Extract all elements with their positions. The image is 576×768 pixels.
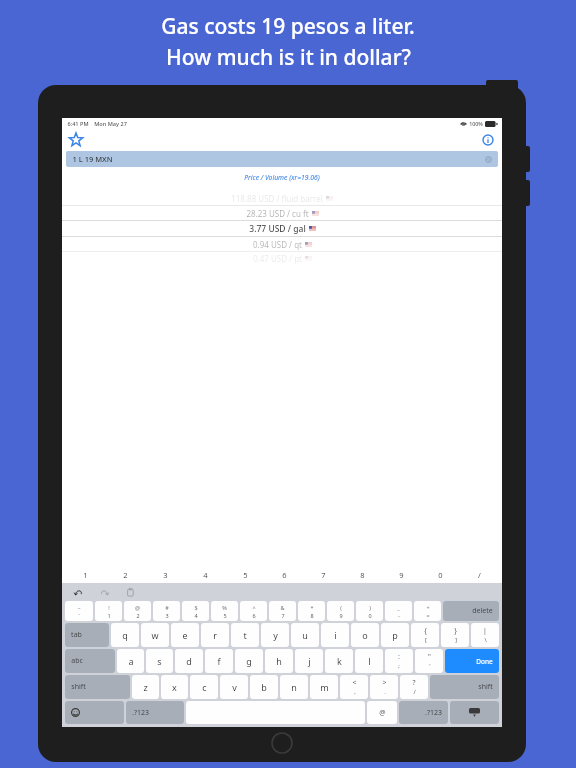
button[interactable]: u <box>291 623 319 647</box>
button[interactable]: n <box>280 675 308 699</box>
button[interactable]: > <box>370 675 398 699</box>
button[interactable]: p <box>381 623 409 647</box>
button[interactable]: 1 <box>66 568 104 581</box>
button[interactable]: 0 <box>422 568 459 581</box>
button[interactable]: % <box>211 601 238 621</box>
button[interactable]: shift <box>65 675 130 699</box>
button[interactable]: b <box>250 675 278 699</box>
button[interactable]: Redo <box>96 584 112 600</box>
staticText: 0.94 USD / qt <box>253 239 302 250</box>
button[interactable]: 3 <box>146 568 184 581</box>
button[interactable]: .?123 <box>399 701 448 724</box>
staticText: 2 <box>123 570 128 580</box>
button[interactable]: o <box>351 623 379 647</box>
button[interactable]: h <box>265 649 293 673</box>
button[interactable]: shift <box>430 675 499 699</box>
button[interactable]: .?123 <box>126 701 184 724</box>
button[interactable]: # <box>153 601 180 621</box>
button[interactable]: ) <box>356 601 383 621</box>
button[interactable]: d <box>175 649 203 673</box>
button[interactable]: Favorite <box>67 131 85 149</box>
button[interactable]: : <box>385 649 413 673</box>
button[interactable]: 9 <box>383 568 420 581</box>
button[interactable]: Emoji <box>65 701 124 724</box>
button[interactable]: Home <box>271 732 293 754</box>
staticText: abc <box>71 656 83 666</box>
button[interactable]: 0.94 USD / qt <box>62 237 502 251</box>
button[interactable]: Undo <box>70 584 86 600</box>
button[interactable]: z <box>132 675 159 699</box>
button[interactable]: @ <box>367 701 397 724</box>
button[interactable]: Hide keyboard <box>450 701 499 724</box>
button[interactable]: } <box>441 623 469 647</box>
button[interactable]: $ <box>182 601 209 621</box>
button[interactable]: m <box>310 675 338 699</box>
staticText: 4 <box>194 612 198 619</box>
button[interactable]: v <box>220 675 248 699</box>
button[interactable]: c <box>190 675 218 699</box>
button[interactable]: ~ <box>65 601 93 621</box>
staticText: 8 <box>360 570 365 580</box>
button[interactable]: ( <box>327 601 354 621</box>
button[interactable]: s <box>146 649 173 673</box>
button[interactable]: g <box>235 649 263 673</box>
button[interactable]: < <box>340 675 368 699</box>
button[interactable]: { <box>411 623 439 647</box>
button[interactable]: 2 <box>106 568 144 581</box>
button[interactable]: delete <box>443 601 499 621</box>
staticText: 6 <box>252 612 256 619</box>
button[interactable]: * <box>298 601 325 621</box>
staticText: # <box>165 604 169 611</box>
staticText: Mon May 27 <box>94 120 127 128</box>
button[interactable]: i <box>321 623 349 647</box>
button[interactable]: 7 <box>305 568 342 581</box>
button[interactable]: 5 <box>226 568 264 581</box>
staticText: { <box>424 626 427 636</box>
button[interactable]: / <box>461 568 498 581</box>
staticText: i <box>334 629 337 641</box>
staticText: 0 <box>368 612 372 619</box>
button[interactable]: " <box>415 649 443 673</box>
button[interactable]: Paste <box>122 584 138 600</box>
button[interactable]: k <box>325 649 353 673</box>
button[interactable]: ! <box>95 601 122 621</box>
staticText: , <box>354 688 356 696</box>
button[interactable]: j <box>295 649 323 673</box>
button[interactable]: tab <box>65 623 109 647</box>
button[interactable]: 4 <box>186 568 224 581</box>
button[interactable]: 1 L 19 MXN <box>66 151 498 167</box>
button[interactable]: + <box>414 601 441 621</box>
button[interactable]: r <box>201 623 229 647</box>
button[interactable]: ^ <box>240 601 267 621</box>
staticText: 1 <box>107 612 111 619</box>
button[interactable]: | <box>471 623 499 647</box>
button[interactable]: t <box>231 623 259 647</box>
button[interactable]: @ <box>124 601 151 621</box>
button[interactable]: Info <box>479 131 497 149</box>
button[interactable]: 6 <box>266 568 303 581</box>
button[interactable]: y <box>261 623 289 647</box>
button[interactable]: 8 <box>344 568 381 581</box>
button[interactable]: 3.77 USD / gal <box>62 221 502 236</box>
button[interactable]: & <box>269 601 296 621</box>
button[interactable]: 28.23 USD / cu ft <box>62 206 502 220</box>
button[interactable]: l <box>355 649 383 673</box>
button[interactable]: e <box>171 623 199 647</box>
staticText: Gas costs 19 pesos a liter. <box>161 12 415 41</box>
staticText: 3.77 USD / gal <box>249 223 306 235</box>
staticText: | <box>483 626 487 636</box>
button[interactable]: w <box>141 623 169 647</box>
button[interactable]: a <box>117 649 144 673</box>
button[interactable]: f <box>205 649 233 673</box>
button[interactable]: x <box>161 675 188 699</box>
staticText: a <box>128 655 134 667</box>
button[interactable]: ? <box>400 675 428 699</box>
button[interactable]: 118.88 USD / fluid barrel <box>62 192 502 205</box>
button[interactable]: abc <box>65 649 115 673</box>
staticText: Price / Volume (xr=19.06) <box>62 173 502 182</box>
button[interactable]: _ <box>385 601 412 621</box>
button[interactable]: Done <box>445 649 499 673</box>
button[interactable]: q <box>111 623 139 647</box>
